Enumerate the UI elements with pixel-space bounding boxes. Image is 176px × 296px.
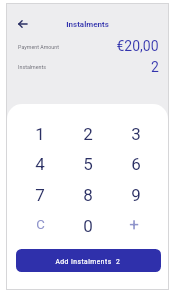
staticText: €20,00: [116, 38, 159, 54]
staticText: 2: [151, 59, 159, 75]
button[interactable]: 0: [65, 211, 111, 241]
button[interactable]: 9: [113, 180, 159, 210]
staticText: Instalments: [66, 20, 109, 29]
staticText: +: [129, 214, 139, 234]
staticText: 0: [83, 216, 93, 236]
staticText: 8: [83, 185, 93, 205]
staticText: 7: [35, 185, 45, 205]
staticText: Payment Amount: [18, 44, 59, 50]
staticText: 2: [83, 124, 93, 144]
staticText: Add Instalments: [55, 258, 112, 266]
button[interactable]: 5: [65, 149, 111, 179]
staticText: 5: [83, 154, 93, 174]
button[interactable]: +: [111, 209, 157, 239]
button[interactable]: 8: [65, 180, 111, 210]
staticText: 3: [131, 124, 141, 144]
button[interactable]: C: [17, 209, 63, 239]
staticText: C: [36, 217, 45, 232]
staticText: 6: [131, 154, 141, 174]
button[interactable]: 2: [65, 119, 111, 149]
button[interactable]: 4: [17, 149, 63, 179]
button[interactable]: 3: [113, 119, 159, 149]
staticText: 9: [131, 185, 141, 205]
button[interactable]: 6: [113, 149, 159, 179]
staticText: 4: [35, 154, 45, 174]
button[interactable]: 1: [17, 119, 63, 149]
staticText: 1: [35, 124, 45, 144]
button[interactable]: Add Instalments: [16, 249, 161, 272]
staticText: 2: [116, 258, 120, 266]
button[interactable]: 7: [17, 180, 63, 210]
staticText: Instalments: [18, 64, 46, 70]
button[interactable]: Back: [12, 13, 34, 35]
